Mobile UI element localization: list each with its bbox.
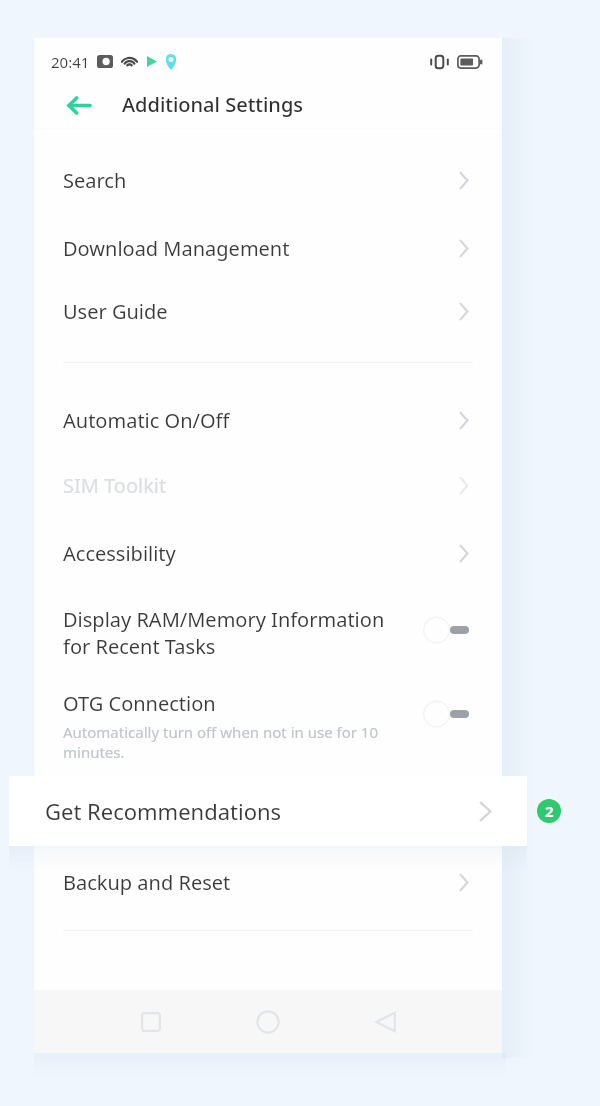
staticText: Download Management xyxy=(63,235,290,262)
staticText: Display RAM/Memory Information xyxy=(63,606,385,633)
button[interactable]: Download Management xyxy=(34,224,502,272)
button[interactable]: SIM Toolkit xyxy=(34,461,502,509)
button[interactable]: Search xyxy=(34,156,502,204)
staticText: User Guide xyxy=(63,298,168,325)
button[interactable]: Toggle xyxy=(423,700,470,728)
button[interactable]: Home xyxy=(245,990,291,1053)
button[interactable]: User Guide xyxy=(34,287,502,335)
staticText: Get Recommendations xyxy=(45,796,282,826)
button[interactable]: Get Recommendations xyxy=(9,776,527,846)
button[interactable]: Recents xyxy=(128,990,174,1053)
button[interactable]: Back xyxy=(362,990,408,1053)
button[interactable]: Step 2 xyxy=(537,799,561,823)
staticText: Search xyxy=(63,167,127,194)
staticText: Additional Settings xyxy=(122,91,304,118)
staticText: for Recent Tasks xyxy=(63,633,216,660)
staticText: 2 xyxy=(545,801,554,821)
staticText: Backup and Reset xyxy=(63,869,231,896)
staticText: OTG Connection xyxy=(63,690,216,717)
staticText: 20:41 xyxy=(51,52,90,72)
staticText: Automatic On/Off xyxy=(63,407,230,434)
button[interactable]: Backup and Reset xyxy=(34,858,502,906)
button[interactable]: Accessibility xyxy=(34,529,502,577)
staticText: Get Recommendations xyxy=(63,798,278,825)
button[interactable]: Toggle xyxy=(423,616,470,644)
button[interactable]: Display RAM/Memory Information xyxy=(34,606,502,660)
button[interactable]: OTG Connection xyxy=(34,690,502,762)
staticText: SIM Toolkit xyxy=(63,472,167,499)
button[interactable]: Automatic On/Off xyxy=(34,396,502,444)
staticText: minutes. xyxy=(63,742,125,762)
staticText: Accessibility xyxy=(63,540,176,567)
staticText: Automatically turn off when not in use f… xyxy=(63,722,379,742)
button[interactable]: Back xyxy=(63,90,93,120)
button[interactable]: Get Recommendations xyxy=(34,787,502,835)
